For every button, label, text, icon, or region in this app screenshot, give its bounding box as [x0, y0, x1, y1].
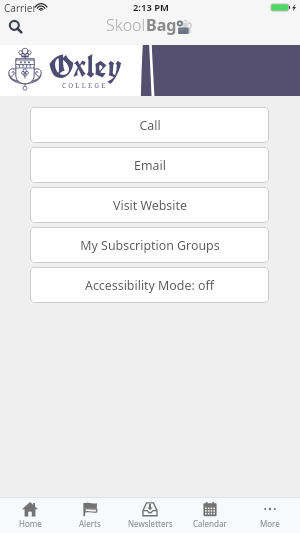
staticText: 2:13 PM	[133, 1, 169, 14]
button[interactable]: Search	[6, 17, 26, 37]
staticText: Home	[19, 518, 42, 529]
staticText: My Subscription Groups	[80, 237, 220, 254]
staticText: Email	[134, 157, 166, 174]
button[interactable]: Home	[0, 498, 60, 533]
staticText: Oxley	[49, 46, 122, 87]
staticText: Skool	[106, 14, 146, 36]
staticText: Calendar	[193, 518, 227, 529]
staticText: Newsletters	[128, 518, 173, 529]
staticText: Carrier	[4, 1, 37, 15]
staticText: Accessibility Mode: off	[85, 277, 214, 294]
button[interactable]: Visit Website	[30, 187, 269, 223]
button[interactable]: My Subscription Groups	[30, 227, 269, 263]
button[interactable]: Alerts	[60, 498, 120, 533]
staticText: Visit Website	[113, 197, 187, 214]
button[interactable]: Newsletters	[120, 498, 180, 533]
button[interactable]: More	[240, 498, 300, 533]
staticText: COLLEGE	[62, 81, 108, 90]
button[interactable]: Calendar	[180, 498, 240, 533]
button[interactable]: Email	[30, 147, 269, 183]
staticText: More	[260, 518, 280, 529]
staticText: Call	[139, 117, 161, 134]
button[interactable]: Accessibility Mode: off	[30, 267, 269, 303]
staticText: Alerts	[79, 518, 101, 529]
button[interactable]: Call	[30, 107, 269, 143]
staticText: Bag	[146, 14, 177, 36]
